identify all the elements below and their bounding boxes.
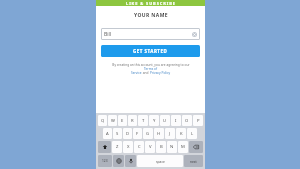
button[interactable]: H	[154, 128, 164, 139]
staticText: R	[131, 118, 134, 124]
button[interactable]: P	[193, 115, 203, 126]
button[interactable]: O	[182, 115, 192, 126]
staticText: P	[197, 118, 200, 124]
staticText: YOUR NAME	[134, 12, 168, 19]
button[interactable]: W	[108, 115, 117, 126]
staticText: 123	[102, 159, 108, 163]
button[interactable]: D	[123, 128, 132, 139]
staticText: space	[156, 159, 165, 163]
staticText: Q	[101, 118, 105, 124]
staticText: Y	[153, 118, 156, 124]
button[interactable]: B	[156, 141, 166, 153]
staticText: LIKE & SUBSCRIBE	[126, 1, 176, 6]
button[interactable]: G	[143, 128, 153, 139]
staticText: O	[185, 118, 189, 124]
staticText: K	[180, 131, 183, 137]
button[interactable]: 123	[98, 155, 112, 167]
staticText: T	[142, 118, 145, 124]
button[interactable]: Terms of	[144, 67, 158, 71]
button[interactable]: S	[113, 128, 122, 139]
staticText: G	[146, 131, 150, 137]
staticText: and	[142, 71, 150, 75]
staticText: F	[136, 131, 139, 137]
staticText: J	[169, 131, 171, 137]
button[interactable]: Q	[98, 115, 107, 126]
button[interactable]: K	[176, 128, 186, 139]
button[interactable]: M	[178, 141, 188, 153]
button[interactable]: Shift	[98, 141, 111, 153]
staticText: GET STARTED	[133, 48, 168, 54]
button[interactable]: X	[123, 141, 133, 153]
button[interactable]: Bill	[101, 28, 200, 40]
button[interactable]: Y	[149, 115, 159, 126]
button[interactable]: GET STARTED	[101, 45, 200, 57]
staticText: V	[149, 144, 152, 150]
staticText: next	[190, 159, 197, 163]
staticText: M	[181, 144, 185, 150]
staticText: D	[126, 131, 130, 137]
button[interactable]: I	[171, 115, 181, 126]
button[interactable]: J	[165, 128, 175, 139]
staticText: H	[157, 131, 161, 137]
staticText: A	[106, 131, 109, 137]
button[interactable]: F	[133, 128, 142, 139]
button[interactable]: Service	[131, 71, 142, 75]
button[interactable]: U	[160, 115, 170, 126]
button[interactable]: L	[187, 128, 197, 139]
button[interactable]: A	[103, 128, 112, 139]
staticText: B	[160, 144, 163, 150]
button[interactable]: Change language	[113, 155, 124, 167]
button[interactable]: T	[138, 115, 148, 126]
button[interactable]: E	[118, 115, 127, 126]
staticText: C	[138, 144, 141, 150]
button[interactable]: R	[128, 115, 137, 126]
staticText: X	[127, 144, 130, 150]
button[interactable]: Clear text	[192, 32, 197, 37]
button[interactable]: V	[145, 141, 155, 153]
staticText: S	[116, 131, 119, 137]
staticText: N	[170, 144, 174, 150]
button[interactable]: N	[167, 141, 177, 153]
button[interactable]: Backspace	[189, 141, 203, 153]
staticText: I	[175, 118, 177, 124]
staticText: E	[121, 118, 124, 124]
staticText: By creating an this account, you are agr…	[112, 63, 190, 67]
staticText: U	[163, 118, 167, 124]
button[interactable]: Voice input	[125, 155, 136, 167]
button[interactable]: Z	[112, 141, 122, 153]
button[interactable]: space	[137, 155, 183, 167]
staticText: Z	[116, 144, 119, 150]
staticText: L	[191, 131, 194, 137]
button[interactable]: Privacy Policy	[150, 71, 171, 75]
staticText: Bill	[104, 31, 112, 38]
button[interactable]: C	[134, 141, 144, 153]
button[interactable]: next	[184, 155, 203, 167]
staticText: W	[111, 118, 115, 124]
